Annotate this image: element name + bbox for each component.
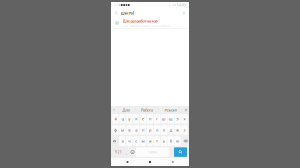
staticText: ц (121, 116, 123, 121)
staticText: м (142, 138, 145, 144)
staticText: с (135, 138, 137, 144)
button[interactable]: Period (169, 147, 174, 157)
staticText: е (142, 116, 144, 121)
staticText: у (128, 116, 130, 121)
staticText: Для разработчиков (123, 18, 158, 24)
button[interactable]: Recents (121, 158, 133, 166)
button[interactable]: Home (144, 158, 156, 166)
button[interactable]: Работа (141, 107, 153, 113)
button[interactable]: Для Ра (111, 8, 189, 18)
staticText: . (171, 149, 172, 155)
staticText: п (142, 127, 144, 132)
staticText: Русский (147, 150, 157, 154)
button[interactable]: е (140, 114, 146, 124)
staticText: э (183, 127, 185, 132)
staticText: Работа (141, 107, 153, 113)
staticText: Для (122, 107, 129, 113)
staticText: ш (162, 116, 166, 121)
staticText: ж (176, 127, 179, 132)
button[interactable]: х (181, 114, 188, 124)
staticText: я (121, 138, 123, 144)
staticText: в (128, 127, 130, 132)
staticText: т (156, 138, 158, 144)
staticText: й (114, 116, 116, 121)
staticText: з (177, 116, 179, 121)
staticText: г (156, 116, 158, 121)
button[interactable]: н (147, 114, 153, 124)
staticText: л (163, 127, 165, 132)
button[interactable]: п (140, 125, 146, 135)
button[interactable]: б (168, 136, 174, 146)
staticText: а (135, 127, 137, 132)
button[interactable]: о (154, 125, 160, 135)
button[interactable]: Back (166, 158, 178, 166)
button[interactable]: т (154, 136, 160, 146)
staticText: ь (163, 138, 165, 144)
button[interactable]: и (147, 136, 153, 146)
staticText: ю (176, 138, 179, 144)
staticText: для разработчиков приложений (123, 24, 171, 28)
button[interactable]: ы (119, 125, 126, 135)
button[interactable]: Emoji (129, 147, 136, 157)
button[interactable]: Русский (136, 147, 169, 157)
button[interactable]: с (133, 136, 139, 146)
button[interactable]: г (154, 114, 160, 124)
button[interactable]: ш (161, 114, 167, 124)
staticText: 14:09 (176, 2, 185, 8)
button[interactable]: Keyboard settings (183, 106, 189, 114)
staticText: ы (121, 127, 124, 132)
button[interactable]: я (119, 136, 126, 146)
staticText: к (135, 116, 137, 121)
staticText: д (170, 127, 172, 132)
button[interactable]: ь (161, 136, 167, 146)
button[interactable]: ю (174, 136, 181, 146)
button[interactable]: Ремонт (164, 107, 177, 113)
button[interactable]: ч (126, 136, 132, 146)
button[interactable]: л (161, 125, 167, 135)
staticText: , (126, 149, 127, 155)
button[interactable]: Для (122, 107, 129, 113)
staticText: ч (128, 138, 130, 144)
staticText: б (170, 138, 172, 144)
button[interactable]: Shift (110, 136, 119, 146)
button[interactable]: к (133, 114, 139, 124)
staticText: Для Ра (121, 10, 133, 16)
button[interactable]: м (140, 136, 146, 146)
button[interactable]: ц (119, 114, 126, 124)
staticText: р (149, 127, 151, 132)
staticText: и (149, 138, 151, 144)
button[interactable]: ?123 (113, 147, 123, 157)
button[interactable]: Search (174, 147, 187, 157)
button[interactable]: у (126, 114, 132, 124)
button[interactable]: й (112, 114, 119, 124)
staticText: Ремонт (164, 107, 177, 113)
button[interactable]: Backspace (181, 136, 190, 146)
button[interactable]: щ (168, 114, 174, 124)
button[interactable]: э (181, 125, 188, 135)
button[interactable]: д (168, 125, 174, 135)
button[interactable]: з (174, 114, 181, 124)
button[interactable]: в (126, 125, 132, 135)
button[interactable]: ж (174, 125, 181, 135)
staticText: щ (169, 116, 173, 121)
staticText: х (183, 116, 185, 121)
button[interactable]: Для разработчиков (111, 18, 189, 28)
button[interactable]: ф (112, 125, 119, 135)
staticText: о (156, 127, 158, 132)
staticText: н (149, 116, 151, 121)
staticText: ?123 (115, 150, 122, 154)
button[interactable]: р (147, 125, 153, 135)
button[interactable]: Expand suggestions (111, 106, 117, 114)
staticText: ф (114, 127, 117, 132)
button[interactable]: Comma (123, 147, 129, 157)
button[interactable]: а (133, 125, 139, 135)
